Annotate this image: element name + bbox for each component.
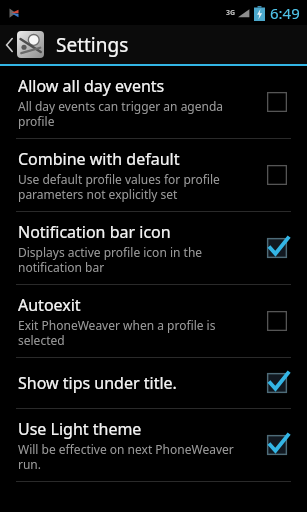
staticText: Combine with default bbox=[18, 148, 180, 170]
button[interactable]: Unchecked bbox=[261, 305, 293, 337]
button[interactable]: Autoexit bbox=[0, 285, 307, 357]
button[interactable]: Use Light theme bbox=[0, 409, 307, 481]
staticText: Exit PhoneWeaver when a profile is selec… bbox=[18, 317, 253, 348]
button[interactable]: Checked bbox=[261, 429, 293, 461]
staticText: Settings bbox=[56, 32, 129, 58]
button[interactable]: Show tips under title. bbox=[0, 358, 307, 408]
staticText: Use default profile values for profile p… bbox=[18, 171, 253, 202]
staticText: Use Light theme bbox=[18, 418, 142, 440]
staticText: Notification bar icon bbox=[18, 221, 171, 243]
button[interactable]: Checked bbox=[261, 232, 293, 264]
staticText: Allow all day events bbox=[18, 75, 165, 97]
button[interactable]: Unchecked bbox=[261, 159, 293, 191]
button[interactable]: Notification bar icon bbox=[0, 212, 307, 284]
button[interactable]: Checked bbox=[261, 367, 293, 399]
staticText: Autoexit bbox=[18, 294, 81, 316]
staticText: Will be effective on next PhoneWeaver ru… bbox=[18, 441, 253, 472]
staticText: 6:49 bbox=[270, 3, 300, 23]
staticText: All day events can trigger an agenda pro… bbox=[18, 98, 253, 129]
button[interactable]: Unchecked bbox=[261, 86, 293, 118]
button[interactable]: Allow all day events bbox=[0, 66, 307, 138]
button[interactable]: Navigate up bbox=[0, 25, 48, 64]
staticText: Show tips under title. bbox=[18, 372, 177, 394]
staticText: Displays active profile icon in the noti… bbox=[18, 244, 253, 275]
staticText: 3G bbox=[226, 8, 236, 18]
button[interactable]: Combine with default bbox=[0, 139, 307, 211]
